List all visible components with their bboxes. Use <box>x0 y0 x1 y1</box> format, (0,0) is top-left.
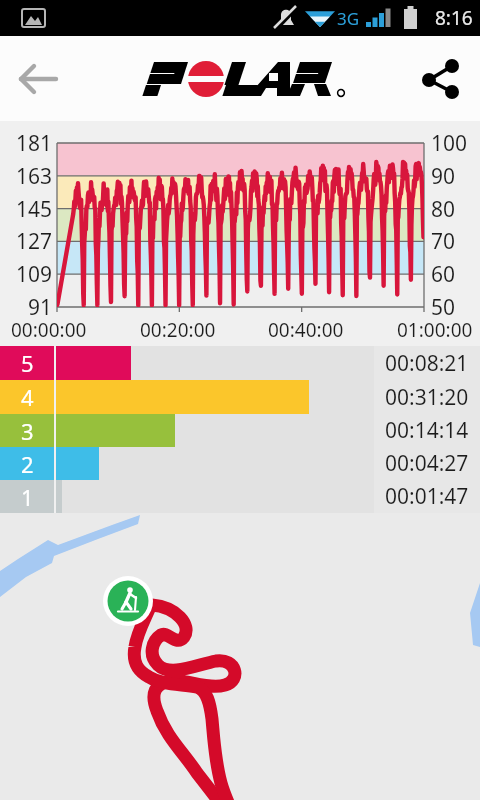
button[interactable]: Route map <box>0 513 480 800</box>
button[interactable]: 1 <box>0 480 480 513</box>
staticText: 109 <box>2 260 52 289</box>
staticText: 80 <box>431 195 456 224</box>
button[interactable]: 5 <box>0 346 480 380</box>
staticText: 181 <box>2 129 52 158</box>
staticText: 91 <box>2 293 52 322</box>
staticText: 3G <box>337 7 360 30</box>
staticText: 00:08:21 <box>385 349 469 378</box>
staticText: 70 <box>431 227 456 256</box>
staticText: 60 <box>431 260 456 289</box>
staticText: 90 <box>431 162 456 191</box>
staticText: 5 <box>21 348 34 378</box>
button[interactable]: 2 <box>0 447 480 480</box>
staticText: 163 <box>2 162 52 191</box>
staticText: 50 <box>431 293 456 322</box>
staticText: 00:40:00 <box>268 317 344 343</box>
staticText: 3 <box>21 416 34 446</box>
staticText: 00:31:20 <box>385 383 469 412</box>
staticText: 00:00:00 <box>11 317 87 343</box>
staticText: 00:01:47 <box>385 482 469 511</box>
staticText: 2 <box>21 449 34 479</box>
staticText: 00:14:14 <box>385 416 469 445</box>
button[interactable]: 4 <box>0 380 480 414</box>
staticText: 1 <box>21 482 34 512</box>
button[interactable]: 3 <box>0 414 480 447</box>
staticText: 00:20:00 <box>140 317 216 343</box>
staticText: 4 <box>21 382 34 412</box>
staticText: 145 <box>2 195 52 224</box>
staticText: 127 <box>2 227 52 256</box>
staticText: 100 <box>431 129 468 158</box>
button[interactable]: Back <box>8 48 70 110</box>
button[interactable]: Share <box>412 50 470 108</box>
staticText: 8:16 <box>435 5 473 31</box>
staticText: 00:04:27 <box>385 449 469 478</box>
staticText: 01:00:00 <box>397 317 473 343</box>
